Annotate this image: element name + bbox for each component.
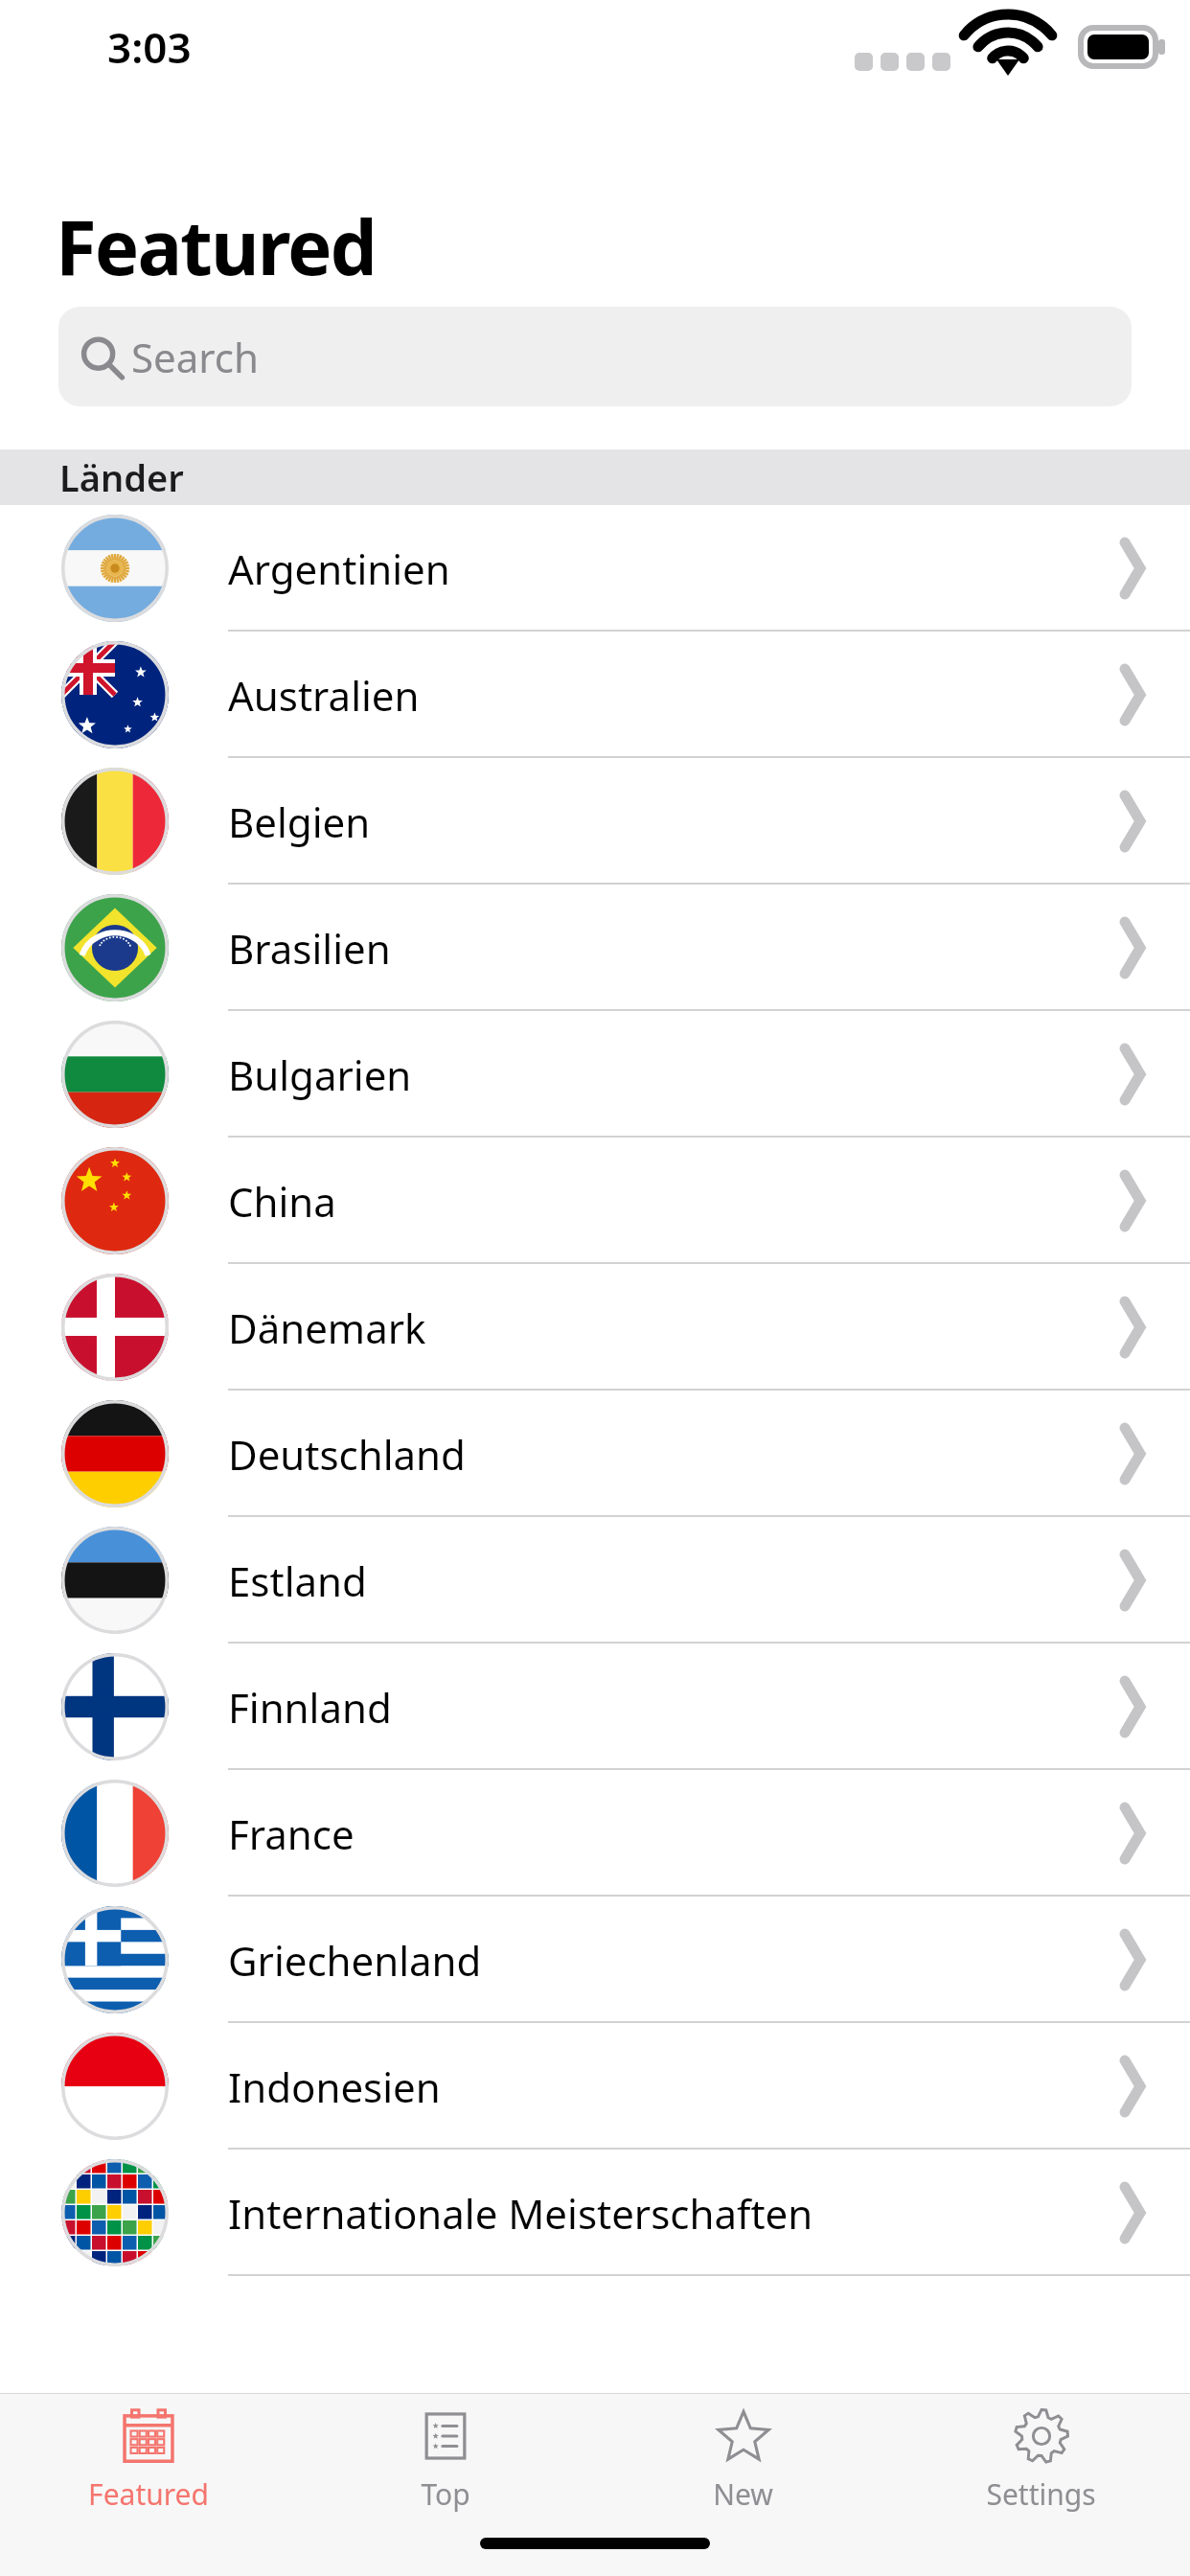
button[interactable]: Australien bbox=[0, 632, 1190, 758]
other: Open Finnland bbox=[1106, 1683, 1154, 1731]
staticText: Dänemark bbox=[228, 1300, 1106, 1355]
staticText: Internationale Meisterschaften bbox=[228, 2186, 1106, 2241]
button[interactable]: Featured bbox=[0, 2394, 297, 2514]
staticText: Featured bbox=[88, 2474, 209, 2514]
staticText: France bbox=[228, 1806, 1106, 1861]
other: Open China bbox=[1106, 1177, 1154, 1225]
button[interactable]: Indonesien bbox=[0, 2023, 1190, 2150]
staticText: Indonesien bbox=[228, 2059, 1106, 2114]
staticText: Bulgarien bbox=[228, 1047, 1106, 1102]
button[interactable]: Estland bbox=[0, 1517, 1190, 1644]
staticText: New bbox=[713, 2474, 773, 2514]
staticText: Länder bbox=[59, 452, 184, 502]
staticText: Belgien bbox=[228, 794, 1106, 849]
other: Open Internationale Meisterschaften bbox=[1106, 2189, 1154, 2237]
other: Open Belgien bbox=[1106, 797, 1154, 845]
other: Open Australien bbox=[1106, 671, 1154, 719]
button[interactable]: Dänemark bbox=[0, 1264, 1190, 1391]
button[interactable]: Bulgarien bbox=[0, 1011, 1190, 1138]
staticText: Deutschland bbox=[228, 1427, 1106, 1482]
staticText: Estland bbox=[228, 1553, 1106, 1608]
button[interactable]: Belgien bbox=[0, 758, 1190, 885]
button[interactable]: Griechenland bbox=[0, 1897, 1190, 2023]
button[interactable]: Settings bbox=[892, 2394, 1190, 2514]
staticText: Featured bbox=[56, 195, 376, 297]
button[interactable]: New bbox=[594, 2394, 892, 2514]
button[interactable]: Brasilien bbox=[0, 885, 1190, 1011]
button[interactable]: France bbox=[0, 1770, 1190, 1897]
staticText: Australien bbox=[228, 668, 1106, 723]
button[interactable]: Finnland bbox=[0, 1644, 1190, 1770]
other: Open Dänemark bbox=[1106, 1303, 1154, 1351]
staticText: Settings bbox=[986, 2474, 1096, 2514]
staticText: Griechenland bbox=[228, 1933, 1106, 1988]
staticText: China bbox=[228, 1174, 1106, 1229]
staticText: Brasilien bbox=[228, 921, 1106, 976]
other: Open Deutschland bbox=[1106, 1430, 1154, 1478]
staticText: Finnland bbox=[228, 1680, 1106, 1735]
other: Open Bulgarien bbox=[1106, 1050, 1154, 1098]
other: Open Griechenland bbox=[1106, 1936, 1154, 1984]
button[interactable]: Search bbox=[58, 307, 1132, 406]
other: Open Argentinien bbox=[1106, 544, 1154, 592]
button[interactable]: China bbox=[0, 1138, 1190, 1264]
staticText: Top bbox=[421, 2474, 470, 2514]
button[interactable]: Top bbox=[297, 2394, 594, 2514]
button[interactable]: Internationale Meisterschaften bbox=[0, 2150, 1190, 2276]
button[interactable]: Argentinien bbox=[0, 505, 1190, 632]
staticText: Argentinien bbox=[228, 541, 1106, 596]
other: Open Estland bbox=[1106, 1556, 1154, 1604]
staticText: 3:03 bbox=[107, 18, 192, 76]
button[interactable]: Deutschland bbox=[0, 1391, 1190, 1517]
other: Open Indonesien bbox=[1106, 2062, 1154, 2110]
other: Open Brasilien bbox=[1106, 924, 1154, 972]
other: Open France bbox=[1106, 1809, 1154, 1857]
staticText: Search bbox=[131, 330, 259, 384]
